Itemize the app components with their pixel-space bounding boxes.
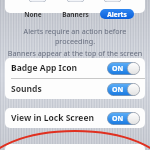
button[interactable]: Toggle on [107, 112, 140, 125]
button[interactable] [5, 144, 145, 150]
staticText: ON [112, 85, 124, 95]
staticText: Badge App Icon [11, 62, 78, 74]
button[interactable] [104, 0, 121, 2]
button[interactable]: Alerts [100, 9, 134, 19]
staticText: None [24, 10, 42, 19]
button[interactable] [29, 0, 46, 2]
button[interactable]: None [16, 9, 50, 19]
button[interactable]: Badge App Icon [5, 58, 145, 78]
button[interactable]: Toggle on [107, 83, 140, 96]
button[interactable]: Banners [58, 9, 92, 19]
staticText: Alerts [107, 10, 127, 19]
button[interactable]: Sounds [5, 79, 145, 99]
staticText: Banners [62, 10, 89, 19]
button[interactable]: View in Lock Screen [5, 108, 145, 128]
staticText: Sounds [11, 83, 42, 95]
staticText: go away automatically. [36, 68, 114, 78]
staticText: ON [112, 64, 124, 74]
button[interactable] [67, 0, 84, 2]
staticText: View in Lock Screen [11, 112, 95, 124]
staticText: Alerts require an action before proceedi… [6, 26, 144, 46]
button[interactable]: Toggle on [107, 62, 140, 75]
staticText: Banners appear at the top of the screen … [6, 48, 144, 68]
staticText: ON [112, 114, 124, 124]
